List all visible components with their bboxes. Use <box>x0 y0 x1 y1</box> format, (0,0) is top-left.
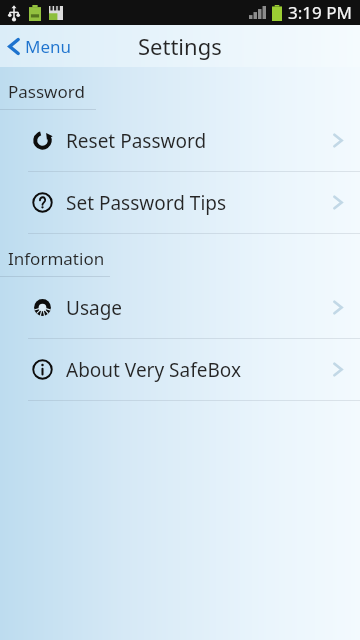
button[interactable]: Reset Password <box>0 110 360 171</box>
staticText: Menu <box>25 35 72 58</box>
other: Open Reset Password <box>332 131 344 150</box>
staticText: 3:19 PM <box>288 1 352 24</box>
staticText: Information <box>8 247 105 270</box>
staticText: About Very SafeBox <box>66 357 332 383</box>
other: Open Set Password Tips <box>332 193 344 212</box>
button[interactable]: Set Password Tips <box>0 172 360 233</box>
staticText: Settings <box>138 31 222 61</box>
button[interactable]: About Very SafeBox <box>0 339 360 400</box>
button[interactable]: Usage <box>0 277 360 338</box>
staticText: Reset Password <box>66 128 332 154</box>
staticText: Set Password Tips <box>66 190 332 216</box>
staticText: Usage <box>66 295 332 321</box>
other: Open About Very SafeBox <box>332 360 344 379</box>
staticText: Password <box>8 80 85 103</box>
other: Open Usage <box>332 298 344 317</box>
button[interactable]: Menu <box>0 28 84 65</box>
